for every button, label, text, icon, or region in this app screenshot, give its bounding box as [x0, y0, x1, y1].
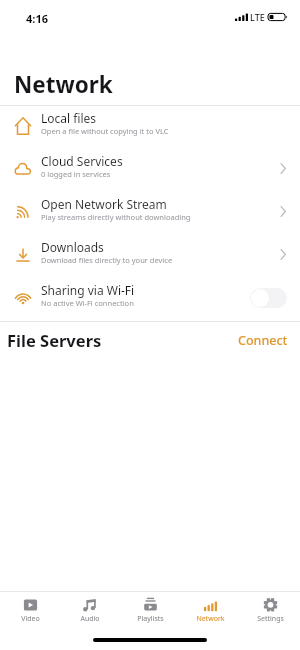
button[interactable]: Local files — [0, 106, 300, 149]
staticText: Sharing via Wi-Fi — [41, 282, 135, 298]
staticText: Playlists — [137, 614, 164, 624]
button[interactable]: Toggle Wi-Fi sharing — [250, 288, 287, 308]
staticText: Download files directly to your device — [41, 255, 173, 265]
staticText: Open Network Stream — [41, 196, 167, 212]
staticText: LTE — [250, 11, 265, 23]
staticText: Settings — [257, 614, 284, 624]
button[interactable]: Network — [180, 598, 240, 624]
staticText: Video — [21, 614, 40, 624]
staticText: Play streams directly without downloadin… — [41, 212, 191, 222]
staticText: Audio — [80, 614, 100, 624]
staticText: Cloud Services — [41, 153, 123, 169]
staticText: No active Wi-Fi connection — [41, 298, 134, 308]
staticText: Network — [14, 69, 113, 100]
button[interactable]: Cloud Services — [0, 149, 300, 192]
button[interactable]: Playlists — [120, 598, 180, 624]
button[interactable]: Video — [0, 598, 60, 624]
staticText: Network — [196, 614, 225, 624]
staticText: Connect — [238, 332, 288, 349]
button[interactable]: Audio — [60, 598, 120, 624]
button[interactable]: Open Network Stream — [0, 192, 300, 235]
staticText: File Servers — [7, 329, 102, 351]
staticText: Local files — [41, 110, 97, 126]
staticText: Open a file without copying it to VLC — [41, 126, 169, 136]
staticText: 4:16 — [26, 11, 48, 26]
button[interactable]: Settings — [240, 598, 300, 624]
button[interactable]: Downloads — [0, 235, 300, 278]
staticText: 0 logged in services — [41, 169, 111, 179]
button[interactable]: Connect — [234, 328, 292, 353]
button[interactable]: Sharing via Wi-Fi — [0, 278, 300, 321]
staticText: Downloads — [41, 239, 104, 255]
